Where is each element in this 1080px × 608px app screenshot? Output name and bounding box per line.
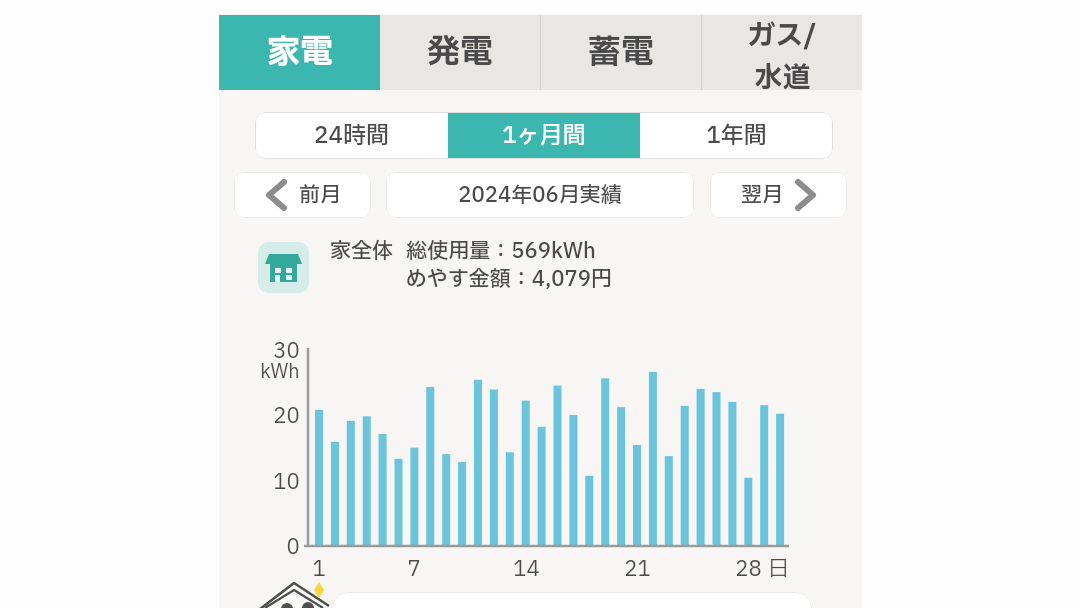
button[interactable] [332,592,812,608]
staticText: 蓄電 [588,28,654,77]
staticText: 水道 [754,57,811,90]
staticText: 翌月 [741,180,783,211]
staticText: めやす金額：4,079円 [406,264,612,292]
staticText: 家全体 [330,236,393,264]
staticText: 1ヶ月間 [502,119,586,153]
staticText: 20 [273,401,300,429]
staticText: ガス/ [747,15,817,57]
staticText: 前月 [299,180,341,211]
button[interactable]: 24時間 [255,112,448,159]
staticText: 1年間 [706,119,767,153]
button[interactable]: 蓄電 [541,15,701,90]
staticText: 1 [312,554,326,582]
button[interactable]: ガス/ [702,15,862,90]
button[interactable]: 発電 [380,15,540,90]
button[interactable]: 1年間 [640,112,833,159]
staticText: 日 [768,554,789,582]
staticText: 0 [286,532,300,560]
staticText: 30 [273,336,300,364]
button[interactable]: 1ヶ月間 [448,112,640,159]
staticText: 21 [624,554,651,582]
button[interactable]: 前月 [234,172,371,218]
staticText: 7 [407,554,421,582]
staticText: 10 [273,467,300,495]
button[interactable]: 翌月 [710,172,847,218]
staticText: 14 [513,554,540,582]
button[interactable]: 家電 [219,15,380,90]
staticText: 24時間 [314,119,389,153]
staticText: 2024年06月実績 [458,180,622,211]
staticText: kWh [260,358,300,386]
staticText: 28 [735,554,762,582]
staticText: 総使用量：569kWh [406,236,596,264]
staticText: 家電 [267,28,333,77]
button[interactable]: 2024年06月実績 [386,172,694,218]
staticText: 発電 [427,28,493,77]
